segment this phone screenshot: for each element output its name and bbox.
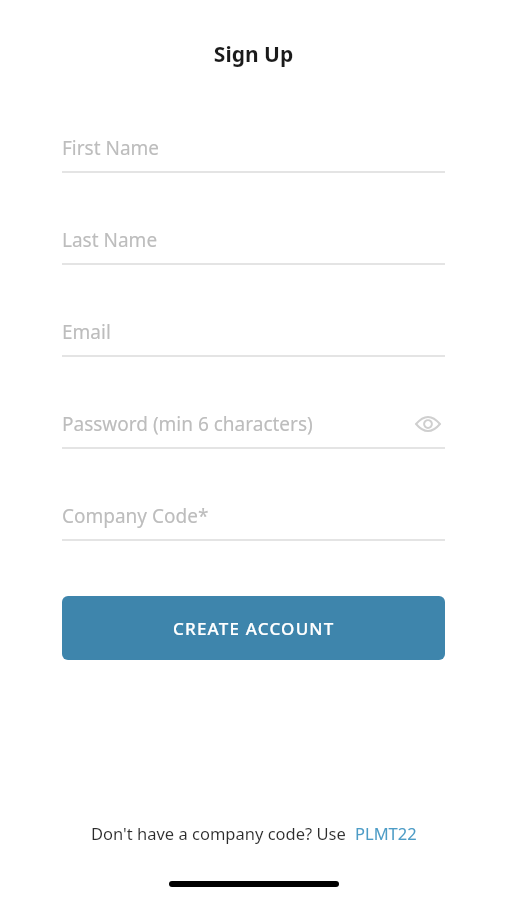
button[interactable]: Don't have a company code? Use xyxy=(0,822,507,844)
button[interactable]: CREATE ACCOUNT xyxy=(62,596,445,660)
staticText: CREATE ACCOUNT xyxy=(173,617,335,640)
staticText: Company Code* xyxy=(62,503,445,529)
staticText: Last Name xyxy=(62,227,445,253)
button[interactable]: First Name xyxy=(62,125,445,171)
staticText: First Name xyxy=(62,135,445,161)
button[interactable]: Password (min 6 characters) xyxy=(62,401,445,447)
staticText: Email xyxy=(62,319,445,345)
staticText: Password (min 6 characters) xyxy=(62,411,411,437)
staticText: Don't have a company code? Use xyxy=(91,822,346,844)
staticText: PLMT22 xyxy=(355,822,417,844)
button[interactable]: Email xyxy=(62,309,445,355)
button[interactable]: Company Code* xyxy=(62,493,445,539)
button[interactable]: Show password xyxy=(411,407,445,441)
button[interactable]: Last Name xyxy=(62,217,445,263)
staticText: Sign Up xyxy=(0,40,507,69)
